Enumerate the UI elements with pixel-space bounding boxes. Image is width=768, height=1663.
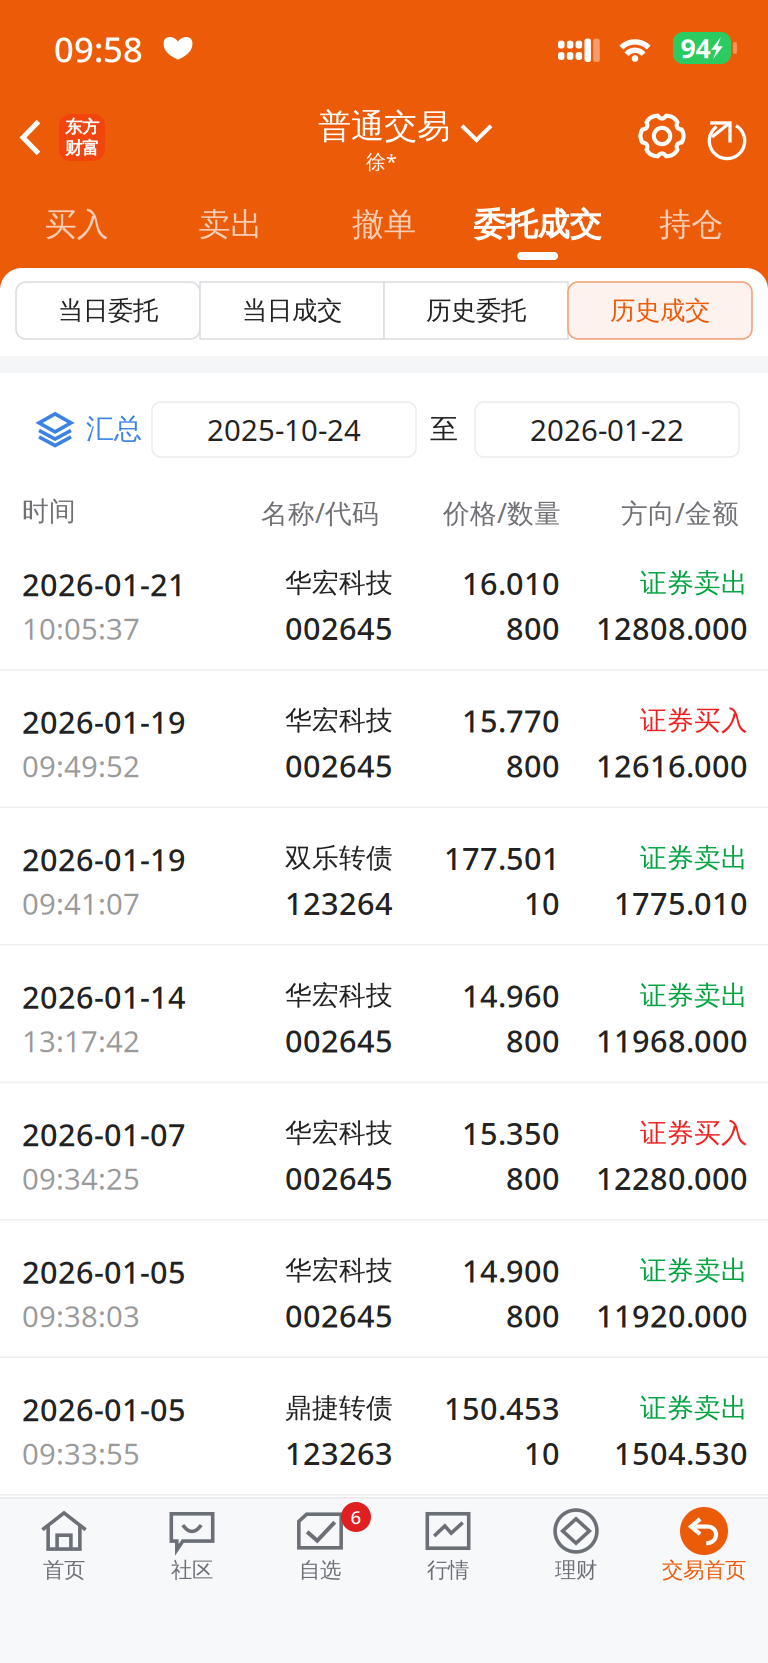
- staticText: 历史委托: [426, 295, 526, 326]
- staticText: 002645: [285, 745, 393, 786]
- button[interactable]: 返回: [8, 100, 117, 175]
- staticText: 10: [524, 883, 560, 923]
- staticText: 2026-01-21: [22, 564, 186, 605]
- staticText: 当日成交: [242, 295, 342, 326]
- staticText: 证券买入: [640, 704, 748, 737]
- staticText: 证券卖出: [640, 1392, 748, 1424]
- button[interactable]: 2026-01-19: [0, 829, 768, 966]
- staticText: 2026-01-05: [22, 1389, 186, 1430]
- staticText: 2026-01-07: [22, 1114, 186, 1155]
- staticText: 东方: [65, 116, 99, 137]
- button[interactable]: 2026-01-21: [0, 554, 768, 691]
- button[interactable]: 2026-01-19: [0, 691, 768, 829]
- staticText: 华宏科技: [285, 979, 393, 1012]
- staticText: 证券卖出: [640, 979, 748, 1012]
- staticText: 10: [524, 1433, 560, 1473]
- staticText: 首页: [43, 1557, 85, 1583]
- staticText: 1504.530: [614, 1433, 748, 1473]
- button[interactable]: 2026-01-05: [0, 1241, 768, 1379]
- staticText: 委托成交: [474, 205, 602, 244]
- button[interactable]: 卖出: [154, 190, 307, 268]
- button[interactable]: 刷新: [695, 105, 759, 169]
- staticText: 买入: [45, 205, 109, 244]
- staticText: 双乐转债: [285, 842, 393, 874]
- staticText: 13:17:42: [22, 1021, 140, 1060]
- staticText: 11920.000: [596, 1295, 748, 1336]
- button[interactable]: 历史成交: [568, 282, 752, 339]
- staticText: 800: [506, 1295, 560, 1336]
- staticText: 10:05:37: [22, 609, 140, 648]
- staticText: 15.770: [462, 700, 560, 741]
- staticText: 002645: [285, 608, 393, 648]
- staticText: 12280.000: [596, 1158, 748, 1198]
- button[interactable]: 设置: [631, 105, 693, 167]
- staticText: 自选: [299, 1557, 341, 1583]
- button[interactable]: 持仓: [614, 190, 768, 268]
- staticText: 12616.000: [596, 745, 748, 786]
- staticText: 800: [506, 1158, 560, 1198]
- staticText: 09:49:52: [22, 746, 140, 785]
- staticText: 汇总: [86, 412, 142, 446]
- staticText: 11968.000: [596, 1020, 748, 1061]
- staticText: 2026-01-05: [22, 1251, 186, 1292]
- staticText: 800: [506, 608, 560, 648]
- button[interactable]: 买入: [0, 190, 154, 268]
- staticText: 财富: [65, 137, 99, 159]
- staticText: 800: [506, 745, 560, 786]
- staticText: 鼎捷转债: [285, 1392, 393, 1424]
- staticText: 历史成交: [610, 295, 710, 326]
- staticText: 至: [430, 412, 458, 446]
- button[interactable]: 首页: [0, 1500, 128, 1610]
- staticText: 证券买入: [640, 1117, 748, 1149]
- button[interactable]: 普通交易: [274, 98, 506, 176]
- button[interactable]: 当日成交: [200, 282, 384, 339]
- staticText: 150.453: [444, 1388, 560, 1428]
- staticText: 12808.000: [596, 608, 748, 648]
- button[interactable]: 2026-01-22: [475, 402, 739, 457]
- staticText: 普通交易: [318, 106, 450, 147]
- button[interactable]: 交易首页: [640, 1500, 768, 1610]
- staticText: 华宏科技: [285, 1117, 393, 1149]
- button[interactable]: 社区: [128, 1500, 256, 1610]
- staticText: 证券卖出: [640, 1254, 748, 1287]
- staticText: 94: [680, 30, 710, 66]
- button[interactable]: 行情: [384, 1500, 512, 1610]
- staticText: 09:58: [54, 26, 143, 72]
- staticText: 09:33:55: [22, 1434, 140, 1473]
- button[interactable]: 理财: [512, 1500, 640, 1610]
- staticText: 行情: [427, 1557, 469, 1583]
- staticText: 2026-01-19: [22, 701, 186, 742]
- button[interactable]: 委托成交: [461, 190, 614, 268]
- staticText: 14.900: [462, 1250, 560, 1291]
- button[interactable]: 2025-10-24: [152, 402, 416, 457]
- staticText: 名称/代码: [261, 495, 379, 530]
- staticText: 证券卖出: [640, 567, 748, 599]
- button[interactable]: 2026-01-14: [0, 966, 768, 1104]
- button[interactable]: 撤单: [307, 190, 461, 268]
- button[interactable]: 2026-01-07: [0, 1104, 768, 1241]
- staticText: 华宏科技: [285, 704, 393, 737]
- staticText: 16.010: [462, 563, 560, 603]
- staticText: 理财: [555, 1557, 597, 1583]
- staticText: 徐*: [366, 148, 397, 175]
- staticText: 证券卖出: [640, 842, 748, 874]
- staticText: 123263: [285, 1433, 393, 1473]
- staticText: 002645: [285, 1020, 393, 1061]
- staticText: 09:41:07: [22, 884, 140, 923]
- staticText: 09:34:25: [22, 1159, 140, 1198]
- staticText: 15.350: [462, 1113, 560, 1153]
- staticText: 卖出: [198, 205, 262, 244]
- staticText: 2025-10-24: [207, 410, 361, 449]
- staticText: 177.501: [444, 838, 560, 878]
- button[interactable]: 历史委托: [384, 282, 568, 339]
- button[interactable]: 2026-01-05: [0, 1379, 768, 1516]
- button[interactable]: 6: [256, 1500, 384, 1610]
- staticText: 当日委托: [58, 295, 158, 326]
- staticText: 09:38:03: [22, 1296, 140, 1335]
- button[interactable]: 当日委托: [16, 282, 200, 339]
- staticText: 时间: [22, 495, 76, 528]
- staticText: 2026-01-22: [530, 410, 684, 449]
- staticText: 价格/数量: [443, 495, 561, 530]
- staticText: 社区: [171, 1557, 213, 1583]
- button[interactable]: 汇总: [28, 405, 150, 453]
